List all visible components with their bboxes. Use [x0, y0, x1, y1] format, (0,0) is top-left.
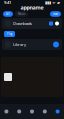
- button[interactable]: Tab 1: [13, 104, 26, 119]
- button[interactable]: Library: [2, 39, 62, 50]
- staticText: 9:41: [4, 0, 11, 5]
- staticText: New: [53, 12, 58, 16]
- button[interactable]: Tab 3: [38, 104, 51, 119]
- staticText: Play: [7, 32, 12, 36]
- staticText: appname: [20, 4, 43, 11]
- button[interactable]: All: [3, 11, 13, 17]
- button[interactable]: Play: [4, 31, 15, 37]
- staticText: All: [6, 12, 10, 16]
- button[interactable]: New: [50, 11, 61, 17]
- button[interactable]: Tab 4: [51, 104, 64, 119]
- button[interactable]: Tab 0: [0, 104, 13, 119]
- button[interactable]: Music: [15, 11, 28, 17]
- staticText: Music: [18, 12, 25, 16]
- button[interactable]: Downloads: [2, 18, 62, 29]
- staticText: Library: [13, 42, 26, 47]
- staticText: Downloads: [13, 21, 32, 26]
- staticText: ▮▮▮ ᯤ ▰: [45, 0, 60, 5]
- button[interactable]: Tab 2: [26, 104, 38, 119]
